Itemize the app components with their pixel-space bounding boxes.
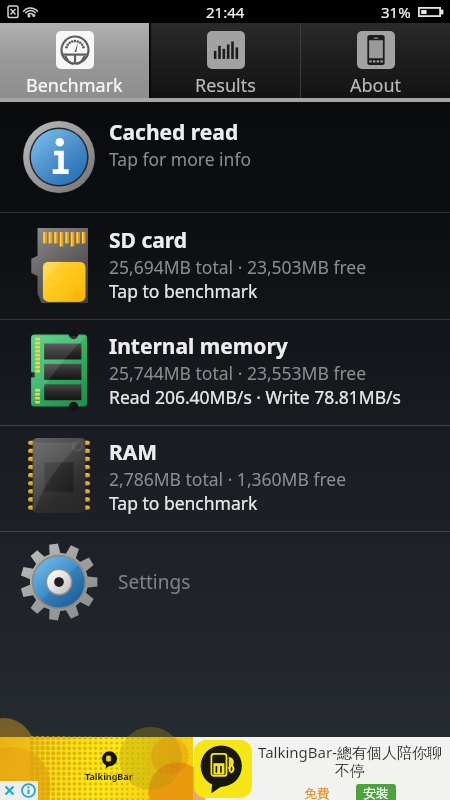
button[interactable]: Close ad [0, 781, 19, 800]
button[interactable]: RAM [0, 426, 450, 531]
staticText: Settings [118, 569, 191, 595]
button[interactable]: SD card [0, 213, 450, 319]
staticText: SD card [109, 226, 188, 255]
staticText: 免費 [304, 785, 330, 800]
staticText: 2,786MB total · 1,360MB free [109, 467, 347, 491]
staticText: TalkingBar-總有個人陪你聊 [258, 742, 442, 762]
staticText: Tap for more info [109, 147, 252, 171]
staticText: Tap to benchmark [109, 279, 258, 303]
button[interactable]: Results [151, 23, 300, 98]
staticText: RAM [109, 438, 158, 467]
staticText: 31% [381, 2, 411, 22]
button[interactable]: Ad info [19, 781, 38, 800]
staticText: 不停 [335, 762, 365, 781]
staticText: About [350, 73, 402, 98]
staticText: Internal memory [109, 332, 288, 361]
button[interactable]: Benchmark [0, 23, 149, 98]
staticText: Tap to benchmark [109, 491, 258, 515]
staticText: Read 206.40MB/s · Write 78.81MB/s [109, 385, 402, 409]
staticText: Results [195, 73, 256, 98]
staticText: Cached read [109, 118, 239, 147]
staticText: 21:44 [206, 2, 245, 22]
button[interactable]: 安裝 [363, 785, 389, 800]
button[interactable]: About [301, 23, 450, 98]
button[interactable]: Cached read [0, 102, 450, 212]
staticText: TalkingBar [85, 770, 133, 782]
staticText: 25,694MB total · 23,503MB free [109, 255, 367, 279]
staticText: Benchmark [26, 73, 123, 98]
button[interactable]: TalkingBar [0, 737, 450, 800]
button[interactable]: Internal memory [0, 320, 450, 425]
staticText: 25,744MB total · 23,553MB free [109, 361, 367, 385]
button[interactable]: Settings [0, 532, 450, 632]
staticText: 安裝 [363, 785, 389, 800]
